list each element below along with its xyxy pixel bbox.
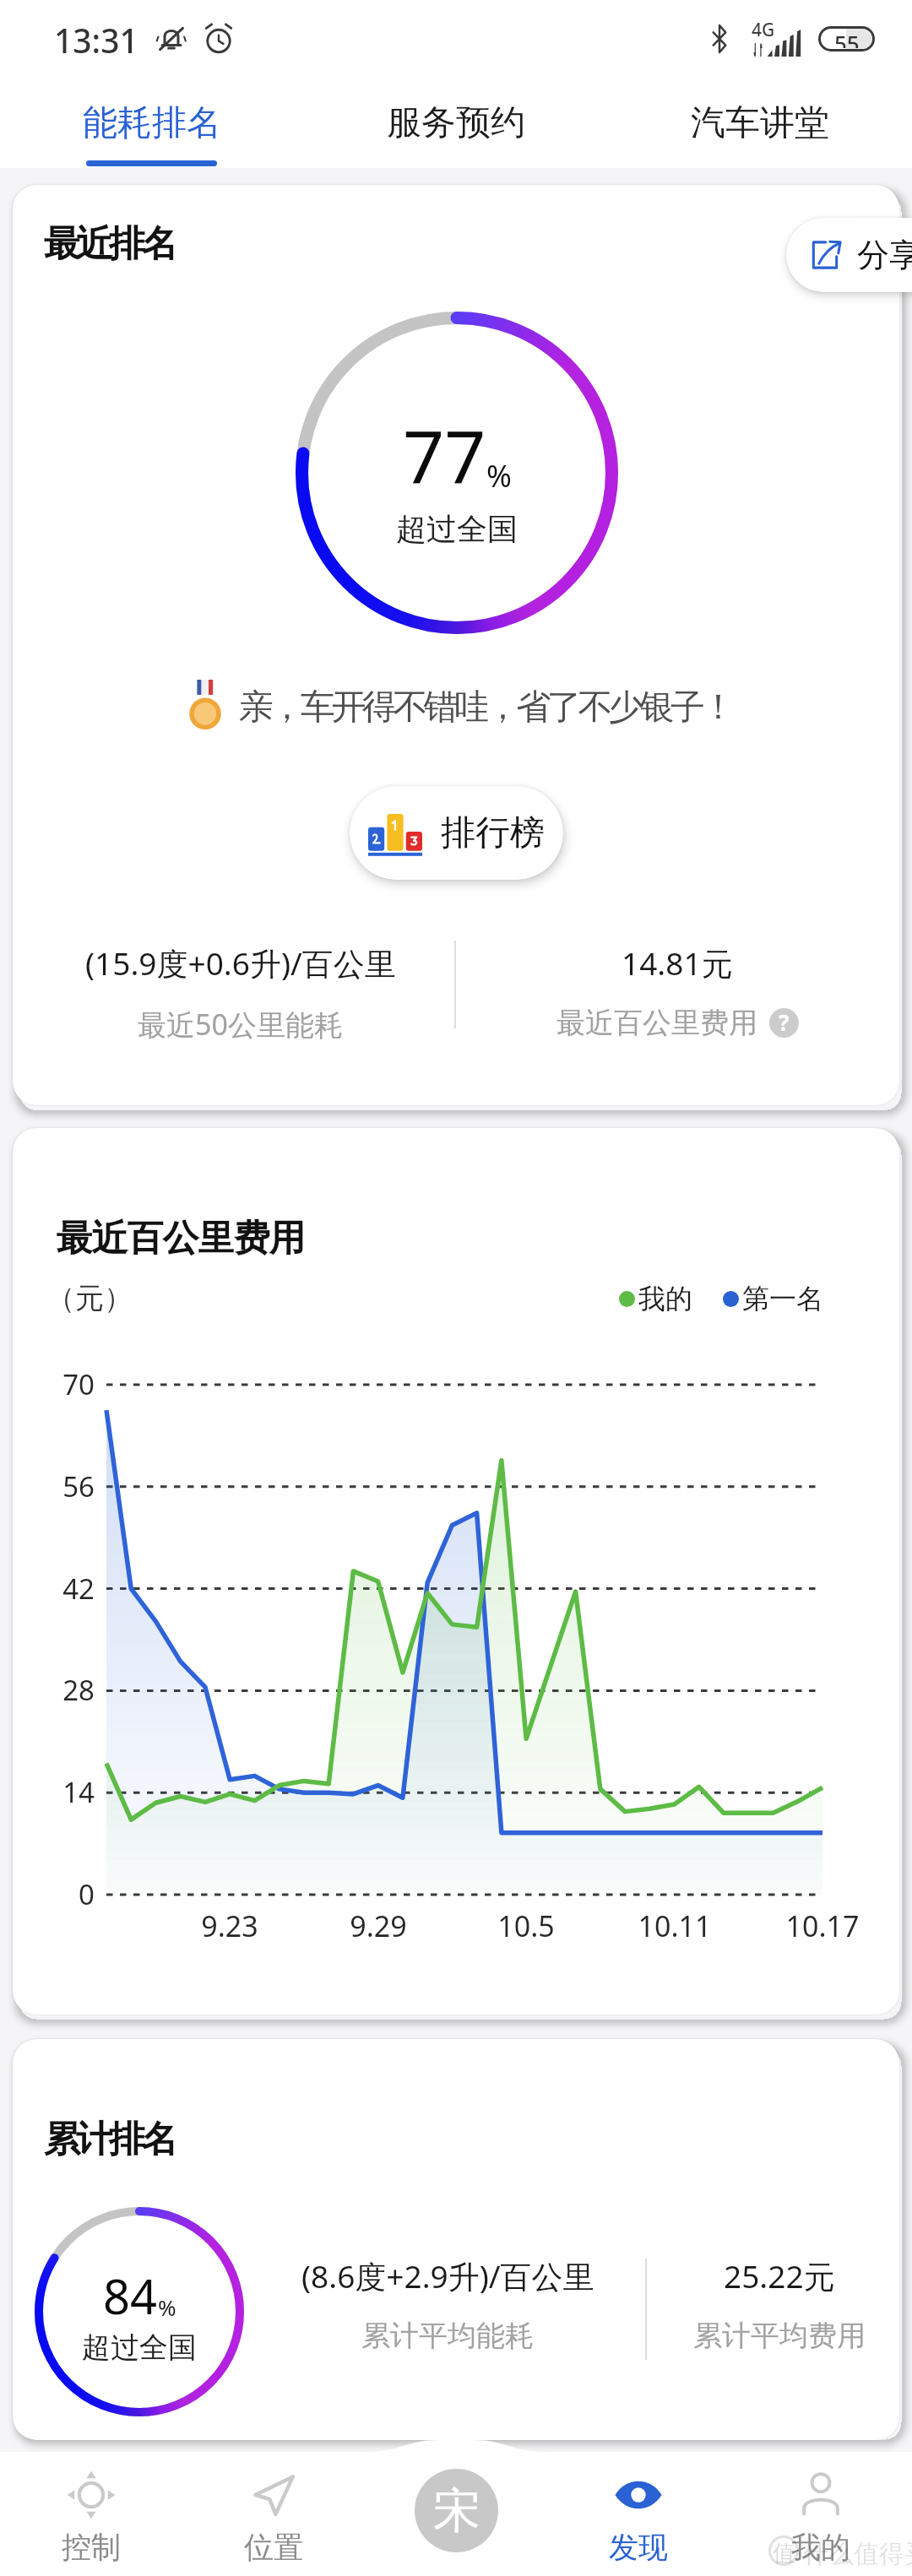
- staticText: 4G: [752, 18, 775, 42]
- staticText: 什么值得买: [803, 2538, 912, 2570]
- button[interactable]: 能耗排名: [0, 78, 304, 168]
- staticText: 宋: [433, 2481, 480, 2541]
- staticText: 服务预约: [387, 101, 525, 145]
- staticText: 14: [34, 1773, 95, 1811]
- button[interactable]: 控制: [0, 2440, 182, 2566]
- button[interactable]: 服务预约: [304, 78, 608, 168]
- staticText: ?: [779, 1008, 790, 1037]
- button[interactable]: Help: [769, 1008, 799, 1038]
- staticText: 控制: [62, 2529, 121, 2566]
- staticText: (8.6度+2.9升)/百公里: [301, 2254, 594, 2297]
- staticText: （元）: [46, 1280, 133, 1316]
- staticText: 42: [34, 1570, 95, 1608]
- staticText: 56: [34, 1467, 95, 1505]
- button[interactable]: 位置: [182, 2440, 365, 2566]
- staticText: 84: [103, 2264, 158, 2328]
- staticText: 累计平均费用: [693, 2318, 866, 2354]
- staticText: 超过全国: [396, 510, 518, 548]
- staticText: 最近百公里费用: [556, 1005, 757, 1041]
- staticText: 70: [34, 1365, 95, 1403]
- staticText: 0: [34, 1875, 95, 1913]
- staticText: 超过全国: [82, 2329, 197, 2366]
- button[interactable]: 分享: [786, 218, 912, 292]
- staticText: 第一名: [742, 1282, 823, 1315]
- staticText: (15.9度+0.6升)/百公里: [85, 941, 396, 984]
- button[interactable]: 汽车讲堂: [608, 78, 912, 168]
- staticText: 能耗排名: [83, 101, 221, 145]
- staticText: 13:31: [54, 18, 138, 62]
- staticText: 77: [403, 406, 486, 505]
- button[interactable]: 发现: [547, 2440, 730, 2566]
- staticText: 28: [34, 1671, 95, 1709]
- staticText: 位置: [244, 2529, 303, 2566]
- staticText: 值: [773, 2539, 795, 2568]
- staticText: 10.17: [763, 1906, 882, 1945]
- button[interactable]: 排行榜: [350, 786, 563, 880]
- staticText: 最近百公里费用: [57, 1216, 305, 1261]
- staticText: 最近排名: [46, 221, 176, 267]
- staticText: 14.81元: [622, 941, 733, 984]
- staticText: 累计平均能耗: [361, 2318, 534, 2354]
- staticText: %: [486, 455, 512, 496]
- button[interactable]: 我的: [730, 2440, 912, 2566]
- staticText: 9.29: [319, 1906, 437, 1945]
- staticText: 发现: [609, 2529, 668, 2566]
- staticText: 排行榜: [441, 811, 545, 855]
- staticText: 10.5: [467, 1906, 585, 1945]
- staticText: 25.22元: [724, 2254, 835, 2297]
- staticText: 我的: [638, 1282, 692, 1315]
- staticText: 10.11: [616, 1906, 734, 1945]
- staticText: %: [158, 2292, 176, 2322]
- staticText: 累计排名: [46, 2117, 176, 2162]
- staticText: 55: [834, 29, 860, 48]
- staticText: 最近50公里能耗: [138, 1005, 343, 1044]
- staticText: 汽车讲堂: [691, 101, 829, 145]
- staticText: 亲，车开得不错哇，省了不少银子！: [241, 686, 734, 729]
- staticText: 我的: [791, 2529, 850, 2566]
- button[interactable]: Vehicle: [415, 2469, 498, 2552]
- staticText: 9.23: [171, 1906, 289, 1945]
- staticText: 分享: [857, 235, 912, 275]
